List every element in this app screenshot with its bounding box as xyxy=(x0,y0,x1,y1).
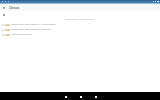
staticText: Clase de ruta y Clase: Grafana 07 / Grup… xyxy=(11,28,51,31)
staticText: Clase del cargo 88 sucle xyxy=(11,33,33,36)
button[interactable]: Recents xyxy=(88,92,103,100)
staticText: C3 xyxy=(7,34,9,36)
staticText: Clase de ruta x Clase: Grafana 11 / Grup… xyxy=(11,23,56,26)
button[interactable]: C2 xyxy=(0,27,160,32)
button[interactable]: Back xyxy=(58,92,73,100)
button[interactable]: C1 xyxy=(0,22,160,27)
staticText: C1 xyxy=(7,24,9,26)
button[interactable]: Menu xyxy=(0,4,8,11)
staticText: Clinicas xyxy=(9,6,20,10)
staticText: C2 xyxy=(7,29,9,31)
button[interactable]: Filter xyxy=(0,13,7,17)
staticText: Subcategoria: Categoria 605 xyxy=(65,18,95,21)
button[interactable]: Home xyxy=(73,92,88,100)
button[interactable]: C3 xyxy=(0,32,160,37)
